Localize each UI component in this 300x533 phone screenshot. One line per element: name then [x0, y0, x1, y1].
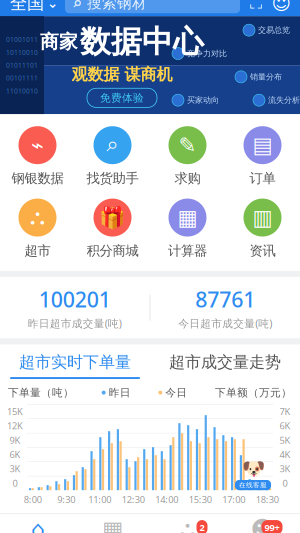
staticText: 3K	[9, 462, 20, 475]
staticText: ▥	[252, 205, 272, 230]
staticText: 订单	[249, 170, 275, 187]
staticText: ☺	[271, 0, 290, 14]
staticText: 计算器	[168, 243, 207, 259]
staticText: ▦	[177, 205, 197, 230]
button[interactable]: ▦	[75, 520, 150, 533]
staticText: ⛶	[250, 0, 262, 12]
staticText: 7K	[279, 405, 290, 418]
staticText: 观数据	[71, 65, 119, 84]
staticText: 数据中心	[80, 23, 204, 61]
button[interactable]: 在线客服	[235, 458, 271, 490]
staticText: 钢银数据	[11, 170, 63, 187]
staticText: 销量分布	[250, 72, 282, 82]
button[interactable]: ⌕	[75, 126, 150, 187]
staticText: 14:00	[155, 493, 178, 506]
staticText: 超市	[24, 243, 50, 259]
staticText: 找货助手	[86, 170, 138, 187]
staticText: ⌕	[106, 135, 118, 156]
staticText: ▦	[102, 516, 123, 533]
staticText: 今日	[165, 386, 187, 399]
staticText: ⛬	[30, 207, 45, 228]
staticText: ⌄	[47, 0, 58, 11]
button[interactable]: 消息	[272, 0, 290, 13]
staticText: 5K	[279, 434, 290, 446]
staticText: 15K	[7, 405, 23, 418]
staticText: 谋商机	[124, 65, 172, 84]
staticText: 87761	[195, 285, 255, 313]
staticText: 0	[282, 477, 287, 489]
staticText: 12K	[7, 419, 23, 432]
button[interactable]: ⛬	[150, 520, 225, 533]
staticText: 今日超市成交量(吨)	[178, 316, 272, 330]
staticText: ✎	[178, 133, 196, 157]
button[interactable]: 扫一扫	[247, 0, 265, 13]
staticText: 11010010	[6, 86, 38, 95]
staticText: 0	[12, 477, 17, 489]
staticText: 昨日超市成交量(吨)	[28, 316, 122, 330]
staticText: 下单量（吨）	[8, 386, 74, 399]
button[interactable]: 免费体验	[87, 88, 157, 107]
staticText: 9:30	[57, 493, 75, 506]
staticText: ⌂	[30, 516, 44, 533]
staticText: 100201	[39, 285, 111, 313]
staticText: 资讯	[249, 243, 275, 259]
staticText: 9K	[9, 434, 20, 446]
button[interactable]: 🎁	[75, 199, 150, 259]
staticText: 交易总览	[258, 25, 290, 35]
staticText: ⌁	[31, 133, 44, 157]
staticText: 10110010	[6, 48, 38, 57]
button[interactable]: ⌕	[65, 0, 240, 13]
staticText: 11:00	[88, 493, 111, 506]
staticText: 12:30	[122, 493, 145, 506]
staticText: 免费体验	[100, 91, 144, 104]
staticText: ⛬	[179, 518, 195, 533]
button[interactable]: ⌂	[0, 520, 75, 533]
staticText: 4K	[279, 448, 290, 461]
staticText: 3K	[279, 462, 290, 475]
button[interactable]: ▥	[225, 199, 300, 259]
staticText: ▤	[252, 133, 272, 157]
staticText: 下单额（万元）	[215, 386, 292, 399]
button[interactable]: 超市实时下单量	[0, 344, 150, 379]
staticText: 01001011	[6, 35, 38, 44]
staticText: 8:00	[24, 493, 42, 506]
button[interactable]: ▦	[150, 199, 225, 259]
staticText: 流失分析	[268, 95, 300, 105]
button[interactable]: ⌁	[0, 126, 75, 187]
button[interactable]: ⛬	[0, 199, 75, 259]
staticText: 99+	[264, 521, 279, 533]
staticText: 01011101	[6, 61, 38, 70]
staticText: 17:00	[222, 493, 245, 506]
staticText: 全国	[10, 0, 44, 14]
staticText: ☻	[250, 516, 274, 533]
staticText: 🎁	[99, 205, 126, 230]
staticText: 积分商城	[86, 243, 138, 259]
button[interactable]: ☻	[225, 520, 300, 533]
button[interactable]: ▤	[225, 126, 300, 187]
staticText: 买家动向	[187, 95, 219, 105]
staticText: 超市成交量走势	[169, 352, 281, 372]
button[interactable]: 全国	[10, 0, 58, 14]
staticText: 15:30	[189, 493, 212, 506]
staticText: ⌕	[72, 0, 82, 13]
staticText: 商家	[40, 30, 78, 53]
staticText: 18:30	[256, 493, 279, 506]
staticText: 🐶	[241, 458, 264, 479]
staticText: 6K	[279, 419, 290, 432]
button[interactable]: 超市成交量走势	[150, 344, 300, 379]
staticText: 竞争力对比	[187, 49, 227, 58]
staticText: 6K	[9, 448, 20, 461]
staticText: 2	[199, 521, 204, 533]
staticText: 00101111	[6, 74, 38, 82]
button[interactable]: ✎	[150, 126, 225, 187]
staticText: 在线客服	[239, 481, 267, 489]
staticText: 超市实时下单量	[19, 352, 131, 372]
staticText: 昨日	[109, 386, 131, 399]
staticText: 搜索钢材	[87, 0, 147, 12]
staticText: 求购	[174, 170, 200, 187]
